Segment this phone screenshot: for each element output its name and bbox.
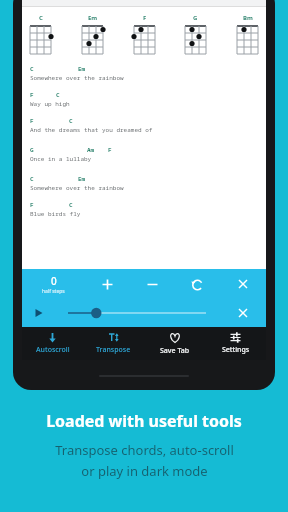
button[interactable]: Transpose down	[130, 269, 175, 299]
staticText: Once in a lullaby	[30, 155, 92, 163]
staticText: F	[30, 117, 34, 125]
staticText: C	[69, 201, 73, 209]
staticText: half steps	[42, 288, 65, 295]
button[interactable]: Reset transpose	[175, 269, 220, 299]
staticText: Em	[78, 175, 86, 183]
staticText: 0	[51, 274, 57, 288]
staticText: F	[30, 91, 34, 99]
staticText: Bm	[243, 14, 253, 22]
button[interactable]: 0	[22, 269, 84, 299]
staticText: Blue birds fly	[30, 210, 81, 218]
button[interactable]: Play autoscroll	[22, 299, 56, 327]
staticText: Somewhere over the rainbow	[30, 74, 124, 82]
staticText: or play in dark mode	[81, 462, 208, 480]
button[interactable]: Transpose	[83, 327, 144, 360]
staticText: F	[143, 14, 147, 22]
button[interactable]	[56, 299, 214, 327]
button[interactable]: Save Tab	[144, 327, 205, 360]
staticText: Am	[87, 146, 95, 154]
staticText: Loaded with useful tools	[46, 410, 242, 432]
staticText: C	[69, 117, 73, 125]
button[interactable]: Transpose up	[84, 269, 130, 299]
staticText: Em	[88, 14, 98, 22]
staticText: G	[30, 146, 34, 154]
staticText: Save Tab	[160, 346, 190, 356]
button[interactable]: Close transpose	[220, 269, 266, 299]
staticText: C	[30, 65, 34, 73]
staticText: G	[193, 14, 198, 22]
button[interactable]: Settings	[205, 327, 266, 360]
staticText: C	[56, 91, 60, 99]
staticText: Transpose	[96, 345, 131, 355]
staticText: C	[39, 14, 43, 22]
staticText: Way up high	[30, 100, 70, 108]
staticText: Transpose chords, auto-scroll	[55, 441, 234, 459]
button[interactable]: Autoscroll	[22, 327, 83, 360]
staticText: Settings	[222, 345, 250, 355]
staticText: F	[108, 146, 112, 154]
staticText: Autoscroll	[36, 345, 70, 355]
staticText: C	[30, 175, 34, 183]
staticText: Somewhere over the rainbow	[30, 184, 124, 192]
button[interactable]: Close autoscroll	[220, 299, 266, 327]
staticText: F	[30, 201, 34, 209]
staticText: Em	[78, 65, 86, 73]
staticText: And the dreams that you dreamed of	[30, 126, 153, 134]
